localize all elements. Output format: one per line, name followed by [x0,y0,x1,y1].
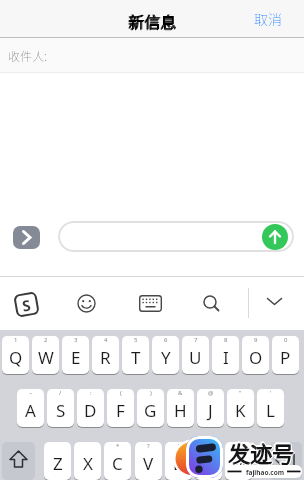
button[interactable] [262,224,288,250]
staticText: F [116,399,125,422]
button[interactable] [58,221,294,252]
button[interactable]: 4 [92,336,119,374]
staticText: ? [147,442,150,450]
button[interactable]: 5 [122,336,149,374]
button[interactable]: ' [195,442,222,480]
button[interactable]: Z [44,442,71,480]
staticText: C [112,452,123,475]
staticText: 1 [14,336,18,344]
button[interactable]: ! [165,442,192,480]
staticText: 发迹号 [229,437,296,469]
staticText: J [208,399,213,422]
button[interactable]: & [167,389,194,427]
button[interactable]: ~ [17,389,44,427]
staticText: 发迹号 [226,436,293,468]
staticText: Q [9,346,23,369]
staticText: 发迹号 [229,435,296,467]
staticText: 新信息 [0,10,304,33]
staticText: 2 [44,336,48,344]
staticText: 6 [164,336,168,344]
staticText: Z [53,452,63,475]
button[interactable]: X [74,442,101,480]
staticText: & [178,389,183,397]
staticText: D [84,399,97,422]
button[interactable] [13,226,40,249]
staticText: / [59,389,62,397]
staticText: 0 [284,336,288,344]
button[interactable]: S [13,291,40,318]
button[interactable] [0,38,304,72]
staticText: " [239,389,242,397]
staticText: W [38,346,54,369]
staticText: 发迹号 [227,435,294,467]
staticText: 3 [74,336,78,344]
button[interactable]: 2 [32,336,59,374]
staticText: @ [208,389,214,397]
staticText: 发迹号 [230,436,297,468]
button[interactable]: ) [137,389,164,427]
staticText: G [144,399,157,422]
staticText: R [100,346,111,369]
button[interactable]: * [104,442,131,480]
staticText: 新信息 [0,9,304,32]
button[interactable]: ' [257,389,284,427]
staticText: * [116,442,120,450]
staticText: I [223,346,229,369]
staticText: N [202,452,215,475]
staticText: 取消 [254,9,282,29]
staticText: 5 [134,336,138,344]
button[interactable]: M [225,442,252,480]
staticText: 新信息 [1,9,304,32]
staticText: 发迹号 [228,437,295,469]
button[interactable] [139,295,162,312]
staticText: 4 [104,336,108,344]
staticText: 8 [224,336,228,344]
staticText: ( [120,389,122,397]
staticText: A [25,399,36,422]
staticText: 收件人: [8,47,47,64]
button[interactable]: 7 [182,336,209,374]
staticText: T [131,346,141,369]
staticText: B [173,452,185,475]
staticText: S [20,294,33,316]
button[interactable]: 6 [152,336,179,374]
staticText: 发迹号 [228,434,295,466]
button[interactable]: 取消 [246,6,290,32]
staticText: U [189,346,202,369]
staticText: ~ [29,389,33,397]
staticText: L [266,399,275,422]
staticText: H [174,399,187,422]
button[interactable]: 9 [242,336,269,374]
staticText: 发迹号 [229,436,296,468]
button[interactable]: @ [197,389,224,427]
staticText: E [71,346,81,369]
button[interactable]: " [227,389,254,427]
staticText: X [83,452,93,475]
staticText: V [143,452,154,475]
staticText: 发迹号 [227,437,294,469]
button[interactable]: / [47,389,74,427]
staticText: ) [150,389,152,397]
button[interactable]: 3 [62,336,89,374]
button[interactable] [2,442,35,480]
staticText: K [235,399,246,422]
button[interactable]: 1 [2,336,29,374]
staticText: Y [161,346,171,369]
staticText: ' [208,442,210,450]
button[interactable]: 8 [212,336,239,374]
staticText: fajihao.com [246,468,285,477]
button[interactable] [265,295,284,308]
staticText: 7 [194,336,198,344]
staticText: S [56,399,66,422]
button[interactable]: ( [107,389,134,427]
button[interactable] [269,442,302,480]
button[interactable]: ? [135,442,162,480]
button[interactable]: : [77,389,104,427]
staticText: ' [270,389,272,397]
button[interactable] [202,294,221,313]
button[interactable] [76,293,97,314]
staticText: 9 [254,336,258,344]
staticText: 发迹号 [228,436,295,468]
button[interactable]: 0 [272,336,299,374]
staticText: P [280,346,291,369]
